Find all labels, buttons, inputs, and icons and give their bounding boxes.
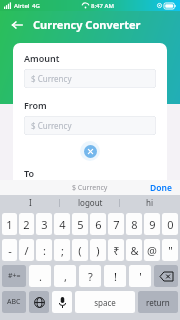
button[interactable]: 4 [54,213,70,235]
button[interactable]: 2 [19,213,34,235]
staticText: space [94,297,116,308]
button[interactable]: @ [144,239,160,261]
staticText: " [168,243,173,258]
staticText: #+= [8,271,21,281]
staticText: 9 [149,217,156,232]
button[interactable]: ; [54,239,70,261]
staticText: : [43,243,46,258]
staticText: 0 [167,217,174,232]
button[interactable]: ! [104,265,126,287]
button[interactable]: I [0,197,60,208]
staticText: $ Currency [72,183,108,193]
button[interactable]: 1 [2,213,17,235]
button[interactable]: $ Currency [24,69,156,88]
staticText: . [39,269,42,284]
button[interactable]: ' [129,265,151,287]
staticText: I [29,197,32,208]
staticText: logout [78,197,103,208]
button[interactable]: return [138,291,178,313]
staticText: 7 [113,217,120,232]
button[interactable]: 0 [162,213,178,235]
staticText: return [146,297,170,308]
button[interactable]: / [19,239,34,261]
staticText: To [24,167,35,179]
staticText: hi [146,197,154,208]
staticText: / [24,243,29,258]
staticText: ? [88,269,93,284]
staticText: ) [96,243,100,258]
button[interactable]: ? [79,265,101,287]
staticText: Done [150,182,172,194]
staticText: Currency Converter [33,17,141,32]
button[interactable]: $ Currency [24,116,156,135]
button[interactable]: 3 [36,213,52,235]
button[interactable]: ( [72,239,88,261]
button[interactable]: Back [8,16,26,34]
button[interactable]: hi [120,197,180,208]
staticText: ' [139,269,142,284]
staticText: ; [61,243,64,258]
button[interactable]: #+= [2,265,26,287]
button[interactable]: 5 [72,213,88,235]
staticText: 4G [32,2,40,10]
staticText: Airtel [14,2,30,10]
staticText: 4 [59,217,66,232]
button[interactable]: logout [60,197,120,208]
button[interactable]: : [36,239,52,261]
button[interactable]: ₹ [108,239,124,261]
button[interactable]: Swap currencies [84,145,97,158]
button[interactable]: space [75,291,135,313]
staticText: 8:47 AM [91,2,114,10]
staticText: 8 [131,217,138,232]
button[interactable]: 8 [126,213,142,235]
button[interactable]: 7 [108,213,124,235]
staticText: ! [114,269,117,284]
staticText: ABC [7,297,21,307]
button[interactable]: ) [90,239,106,261]
staticText: From [24,99,47,111]
button[interactable]: ABC [2,291,26,313]
button[interactable]: Dictate [52,291,72,313]
button[interactable]: " [162,239,178,261]
button[interactable]: Backspace [154,265,178,287]
staticText: $ Currency [31,120,72,131]
staticText: ₹ [113,243,120,258]
staticText: Amount [24,52,60,64]
staticText: 6 [95,217,102,232]
button[interactable]: . [29,265,51,287]
button[interactable]: - [2,239,17,261]
staticText: 5 [77,217,84,232]
button[interactable]: 6 [90,213,106,235]
staticText: - [8,243,12,258]
staticText: ( [78,243,82,258]
button[interactable]: Done [150,182,172,194]
button[interactable]: , [54,265,76,287]
staticText: 3 [41,217,48,232]
button[interactable]: Switch keyboard language [29,291,49,313]
staticText: & [130,243,139,258]
button[interactable]: & [126,239,142,261]
staticText: $ Currency [31,73,72,84]
staticText: 2 [23,217,30,232]
staticText: @ [147,243,157,258]
staticText: 1 [6,217,13,232]
button[interactable]: 9 [144,213,160,235]
staticText: , [64,269,67,284]
